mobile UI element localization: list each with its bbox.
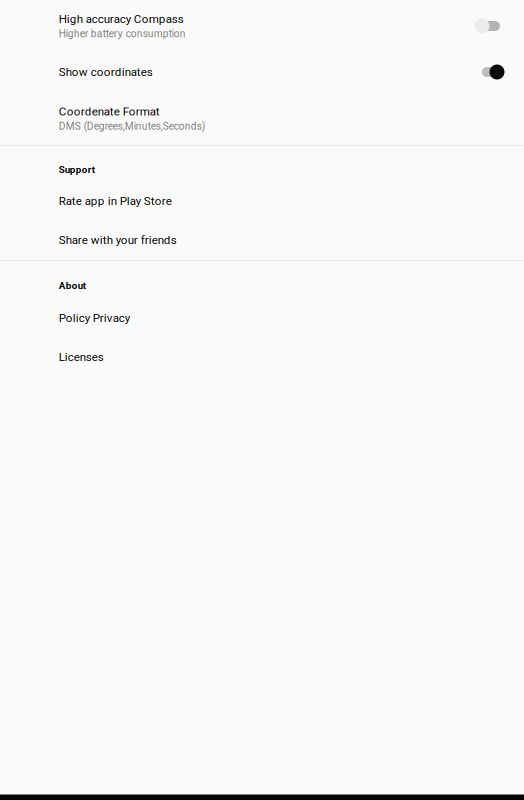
button[interactable]: Licenses bbox=[0, 338, 524, 376]
staticText: Higher battery consumption bbox=[59, 28, 186, 40]
button[interactable]: Policy Privacy bbox=[0, 298, 524, 338]
button[interactable]: Off bbox=[0, 0, 524, 52]
staticText: About bbox=[59, 280, 86, 291]
staticText: Licenses bbox=[59, 350, 104, 364]
staticText: DMS (Degrees,Minutes,Seconds) bbox=[59, 120, 206, 132]
staticText: Support bbox=[59, 164, 95, 175]
staticText: Coordenate Format bbox=[59, 105, 160, 118]
staticText: High accuracy Compass bbox=[59, 12, 184, 26]
button[interactable]: Rate app in Play Store bbox=[0, 182, 524, 220]
staticText: Rate app in Play Store bbox=[59, 194, 172, 208]
staticText: Policy Privacy bbox=[59, 311, 130, 325]
button[interactable]: On bbox=[0, 52, 524, 92]
button[interactable]: Share with your friends bbox=[0, 220, 524, 260]
staticText: Show coordinates bbox=[59, 65, 153, 79]
button[interactable]: Coordenate Format bbox=[0, 92, 524, 145]
staticText: Share with your friends bbox=[59, 233, 177, 247]
